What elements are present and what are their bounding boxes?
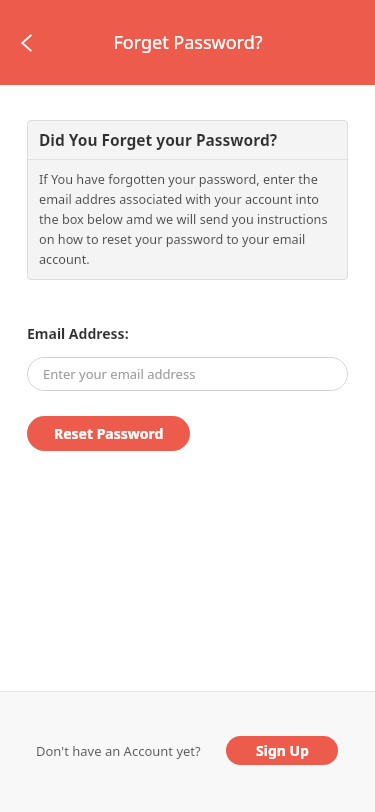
button[interactable]: Enter your email address — [27, 357, 348, 391]
staticText: Enter your email address — [43, 365, 196, 383]
button[interactable]: Reset Password — [27, 416, 190, 451]
staticText: Reset Password — [54, 424, 164, 443]
staticText: Did You Forget your Password? — [39, 129, 278, 150]
staticText: Sign Up — [256, 741, 309, 760]
button[interactable]: Back — [6, 21, 50, 65]
button[interactable]: Sign Up — [226, 736, 338, 765]
staticText: If You have forgotten your password, ent… — [39, 170, 336, 267]
staticText: Don't have an Account yet? — [36, 742, 201, 760]
staticText: Email Address: — [27, 324, 129, 343]
staticText: Forget Password? — [113, 30, 263, 55]
